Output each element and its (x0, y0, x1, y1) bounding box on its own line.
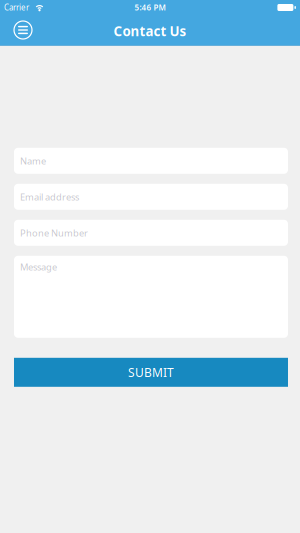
button[interactable]: SUBMIT (14, 358, 288, 387)
staticText: 5:46 PM (134, 2, 165, 13)
staticText: SUBMIT (128, 364, 174, 380)
staticText: Message (20, 261, 57, 273)
staticText: Phone Number (20, 227, 88, 239)
staticText: Email address (20, 191, 79, 203)
staticText: Carrier (4, 2, 29, 13)
staticText: Name (20, 155, 46, 167)
staticText: Contact Us (113, 22, 186, 40)
button[interactable]: Menu (12, 19, 34, 41)
